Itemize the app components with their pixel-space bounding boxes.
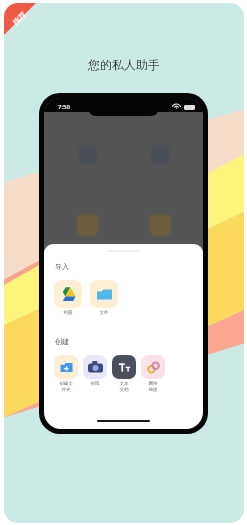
staticText: 导入 bbox=[55, 262, 69, 271]
staticText: 相册 bbox=[54, 310, 82, 316]
staticText: 网络 链接 bbox=[141, 381, 165, 392]
button[interactable]: 拍照 bbox=[83, 355, 107, 387]
staticText: 您的私人助手 bbox=[88, 57, 160, 72]
button[interactable]: 网络 链接 bbox=[141, 355, 165, 392]
staticText: 创建 bbox=[55, 337, 69, 346]
button[interactable]: 相册 bbox=[54, 280, 82, 316]
button[interactable]: 文本 文档 bbox=[112, 355, 136, 392]
button[interactable]: 文件 bbox=[90, 280, 118, 316]
staticText: 文本 文档 bbox=[112, 381, 136, 392]
button[interactable]: 推荐 bbox=[4, 3, 44, 43]
staticText: 文件 bbox=[90, 310, 118, 316]
staticText: 推荐 bbox=[11, 10, 28, 27]
staticText: 7:50 bbox=[58, 103, 70, 111]
staticText: 创建文 件夹 bbox=[54, 381, 78, 392]
staticText: 拍照 bbox=[83, 381, 107, 387]
button[interactable]: 创建文 件夹 bbox=[54, 355, 78, 392]
